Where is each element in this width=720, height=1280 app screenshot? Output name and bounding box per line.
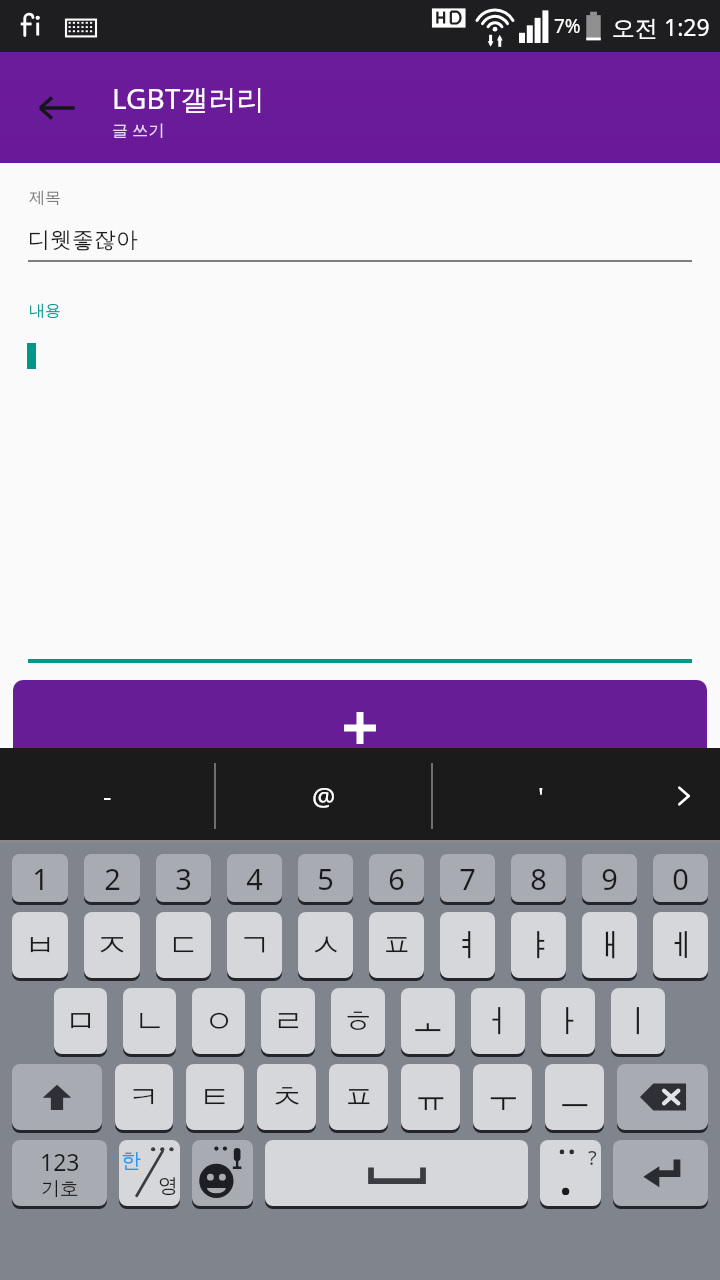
button[interactable]: [0, 343, 720, 659]
staticText: ㅜ: [487, 1077, 519, 1117]
button[interactable]: Space: [265, 1140, 528, 1206]
staticText: 한: [121, 1148, 141, 1173]
staticText: ㄹ: [272, 1001, 304, 1041]
staticText: 9: [601, 859, 618, 898]
button[interactable]: ㄷ: [156, 912, 211, 978]
button[interactable]: More suggestions: [648, 748, 720, 843]
button[interactable]: ': [433, 748, 648, 843]
staticText: 0: [672, 859, 689, 898]
button[interactable]: ㅡ: [545, 1064, 604, 1130]
staticText: ㅓ: [482, 1001, 514, 1041]
staticText: ㅍ: [343, 1077, 375, 1117]
staticText: ㅏ: [552, 1001, 584, 1041]
button[interactable]: Emoji: [192, 1140, 253, 1206]
staticText: ㅌ: [199, 1077, 231, 1117]
staticText: 123: [40, 1146, 80, 1177]
staticText: 7: [459, 859, 476, 898]
staticText: ㅂ: [24, 925, 56, 965]
staticText: ?: [588, 1144, 597, 1171]
button[interactable]: ㅁ: [54, 988, 107, 1054]
button[interactable]: ㅎ: [331, 988, 385, 1054]
button[interactable]: 2: [84, 854, 140, 902]
staticText: ㅁ: [65, 1001, 97, 1041]
staticText: ㅑ: [523, 925, 555, 965]
staticText: ㅇ: [203, 1001, 235, 1041]
staticText: ㅈ: [96, 925, 128, 965]
button[interactable]: 5: [298, 854, 353, 902]
button[interactable]: 8: [511, 854, 566, 902]
button[interactable]: 1: [12, 854, 68, 902]
staticText: LGBT갤러리: [112, 79, 265, 117]
button[interactable]: 3: [156, 854, 211, 902]
button[interactable]: ㅍ: [329, 1064, 388, 1130]
staticText: 제목: [29, 188, 61, 208]
button[interactable]: ㅏ: [541, 988, 595, 1054]
staticText: ㅔ: [665, 925, 697, 965]
button[interactable]: ㄱ: [227, 912, 282, 978]
staticText: 8: [530, 859, 547, 898]
staticText: 3: [175, 859, 192, 898]
button[interactable]: ㅌ: [186, 1064, 244, 1130]
button[interactable]: ㅇ: [192, 988, 245, 1054]
button[interactable]: Back: [26, 77, 88, 139]
button[interactable]: ㅅ: [298, 912, 353, 978]
button[interactable]: ㅋ: [115, 1064, 173, 1130]
button[interactable]: ㅕ: [440, 912, 495, 978]
button[interactable]: ㄹ: [261, 988, 315, 1054]
staticText: ㅣ: [622, 1001, 654, 1041]
staticText: 영: [158, 1173, 178, 1198]
button[interactable]: ㅑ: [511, 912, 566, 978]
button[interactable]: Backspace: [617, 1064, 708, 1130]
button[interactable]: 7: [440, 854, 495, 902]
staticText: ㄷ: [168, 925, 200, 965]
staticText: ㅐ: [594, 925, 626, 965]
staticText: 6: [388, 859, 405, 898]
button[interactable]: ㅍ: [369, 912, 424, 978]
staticText: ㅋ: [128, 1077, 160, 1117]
button[interactable]: ㅐ: [582, 912, 637, 978]
staticText: ㅊ: [271, 1077, 303, 1117]
button[interactable]: ㅈ: [84, 912, 140, 978]
button[interactable]: Shift: [12, 1064, 102, 1130]
staticText: ㅅ: [310, 925, 342, 965]
staticText: ㄱ: [239, 925, 271, 965]
button[interactable]: 9: [582, 854, 637, 902]
button[interactable]: ㅊ: [257, 1064, 316, 1130]
staticText: 7%: [554, 13, 581, 39]
button[interactable]: ㅠ: [401, 1064, 460, 1130]
button[interactable]: 디웻좋잖아: [28, 220, 692, 260]
staticText: 4: [246, 859, 263, 898]
staticText: 오전 1:29: [612, 11, 710, 42]
staticText: 1: [32, 859, 49, 898]
staticText: 내용: [29, 301, 61, 321]
button[interactable]: Symbols: [12, 1140, 107, 1206]
staticText: 2: [104, 859, 121, 898]
button[interactable]: Language: [119, 1140, 180, 1206]
button[interactable]: ㅓ: [471, 988, 525, 1054]
staticText: ㅡ: [559, 1077, 591, 1117]
button[interactable]: ㅜ: [473, 1064, 532, 1130]
button[interactable]: ㅂ: [12, 912, 68, 978]
button[interactable]: -: [0, 748, 214, 843]
button[interactable]: ㅣ: [611, 988, 665, 1054]
button[interactable]: Add attachment: [13, 680, 707, 748]
staticText: 디웻좋잖아: [28, 226, 138, 254]
button[interactable]: Enter: [613, 1140, 708, 1206]
button[interactable]: 0: [653, 854, 708, 902]
staticText: 5: [317, 859, 334, 898]
button[interactable]: ㅔ: [653, 912, 708, 978]
staticText: ㅍ: [381, 925, 413, 965]
button[interactable]: 4: [227, 854, 282, 902]
staticText: ㅗ: [412, 1001, 444, 1041]
staticText: ': [538, 778, 544, 813]
staticText: ㄴ: [134, 1001, 166, 1041]
staticText: ㅠ: [415, 1077, 447, 1117]
button[interactable]: ㅗ: [401, 988, 455, 1054]
button[interactable]: 6: [369, 854, 424, 902]
button[interactable]: @: [216, 748, 431, 843]
staticText: ㅕ: [452, 925, 484, 965]
button[interactable]: Punctuation: [540, 1140, 601, 1206]
button[interactable]: ㄴ: [123, 988, 176, 1054]
staticText: -: [103, 778, 112, 813]
staticText: @: [312, 778, 336, 813]
